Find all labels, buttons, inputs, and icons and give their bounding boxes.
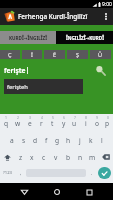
staticText: 2 bbox=[17, 115, 19, 120]
staticText: KURDÎ→ÎNGILÎZÎ bbox=[9, 35, 47, 41]
staticText: Ş bbox=[76, 51, 80, 58]
staticText: Î bbox=[31, 51, 33, 58]
button[interactable]: Ê bbox=[44, 50, 65, 59]
button[interactable]: 7 bbox=[69, 115, 80, 128]
staticText: 3 bbox=[29, 115, 31, 120]
button[interactable]: KURDÎ→ÎNGILÎZÎ bbox=[0, 31, 56, 44]
staticText: t bbox=[51, 119, 54, 128]
staticText: Ç bbox=[8, 51, 12, 58]
staticText: Ferhenga Kurdî-Îngilîzî bbox=[18, 12, 88, 21]
staticText: ?123 bbox=[3, 170, 13, 176]
button[interactable]: n bbox=[74, 151, 86, 163]
staticText: d bbox=[33, 136, 38, 145]
button[interactable]: Home bbox=[49, 184, 65, 200]
button[interactable]: f bbox=[41, 134, 52, 146]
button[interactable]: 4 bbox=[36, 115, 47, 128]
button[interactable]: 0 bbox=[102, 115, 113, 128]
button[interactable]: g bbox=[52, 134, 63, 146]
staticText: o bbox=[95, 119, 99, 128]
staticText: 8 bbox=[85, 115, 87, 120]
button[interactable]: ÎNGILÎZÎ→KURDÎ bbox=[56, 31, 113, 44]
staticText: . bbox=[91, 170, 93, 177]
staticText: s bbox=[22, 136, 26, 145]
button[interactable]: Ç bbox=[0, 50, 20, 59]
button[interactable]: d bbox=[30, 134, 41, 146]
staticText: 4 bbox=[41, 115, 43, 120]
staticText: 6 bbox=[63, 115, 65, 120]
button[interactable]: , bbox=[16, 167, 25, 179]
button[interactable]: b bbox=[62, 151, 74, 163]
staticText: k bbox=[89, 136, 93, 145]
button[interactable]: k bbox=[85, 134, 96, 146]
button[interactable]: 5 bbox=[47, 115, 58, 128]
staticText: 9:00 bbox=[102, 1, 112, 8]
staticText: l bbox=[101, 136, 103, 145]
staticText: ferişte bbox=[4, 66, 26, 75]
button[interactable]: ferişte bbox=[4, 66, 88, 75]
staticText: w bbox=[15, 119, 21, 128]
staticText: r bbox=[40, 119, 43, 128]
button[interactable]: Î bbox=[22, 50, 42, 59]
staticText: n bbox=[78, 153, 83, 162]
button[interactable]: Recents bbox=[81, 184, 97, 200]
button[interactable]: Search bbox=[92, 62, 108, 78]
staticText: u bbox=[72, 119, 77, 128]
button[interactable]: 1 bbox=[0, 115, 12, 128]
staticText: b bbox=[66, 153, 71, 162]
staticText: f bbox=[45, 136, 48, 145]
staticText: i bbox=[85, 119, 87, 128]
button[interactable]: 9 bbox=[91, 115, 102, 128]
staticText: ÎNGILÎZÎ→KURDÎ bbox=[66, 35, 104, 41]
staticText: z bbox=[19, 153, 23, 162]
button[interactable]: m bbox=[86, 151, 98, 163]
button[interactable]: s bbox=[18, 134, 30, 146]
button[interactable]: 8 bbox=[80, 115, 91, 128]
staticText: ferişteh bbox=[7, 83, 28, 91]
staticText: c bbox=[42, 153, 46, 162]
staticText: Û bbox=[98, 51, 103, 58]
staticText: x bbox=[30, 153, 34, 162]
staticText: 0 bbox=[107, 115, 109, 120]
button[interactable]: Û bbox=[90, 50, 111, 59]
staticText: a bbox=[10, 136, 14, 145]
staticText: h bbox=[66, 136, 71, 145]
staticText: g bbox=[55, 136, 60, 145]
staticText: 5 bbox=[52, 115, 54, 120]
button[interactable]: More options bbox=[99, 10, 112, 23]
button[interactable]: a bbox=[6, 134, 18, 146]
staticText: 7 bbox=[74, 115, 76, 120]
staticText: q bbox=[4, 119, 9, 128]
button[interactable]: z bbox=[15, 151, 26, 163]
staticText: j bbox=[79, 136, 81, 145]
button[interactable]: j bbox=[74, 134, 85, 146]
staticText: 9 bbox=[96, 115, 98, 120]
button[interactable]: Enter bbox=[96, 167, 113, 179]
staticText: y bbox=[62, 119, 66, 128]
staticText: Ê bbox=[53, 51, 57, 58]
staticText: e bbox=[28, 119, 32, 128]
button[interactable]: 2 bbox=[12, 115, 24, 128]
staticText: 1 bbox=[5, 115, 7, 120]
button[interactable]: v bbox=[50, 151, 62, 163]
button[interactable]: Back bbox=[16, 184, 32, 200]
staticText: m bbox=[89, 153, 96, 162]
staticText: v bbox=[54, 153, 58, 162]
button[interactable]: ?123 bbox=[0, 167, 16, 179]
button[interactable]: x bbox=[26, 151, 38, 163]
staticText: , bbox=[20, 170, 22, 177]
button[interactable]: ferişteh bbox=[4, 79, 83, 94]
button[interactable]: 6 bbox=[58, 115, 69, 128]
button[interactable]: Ş bbox=[67, 50, 88, 59]
button[interactable]: l bbox=[96, 134, 107, 146]
button[interactable]: . bbox=[87, 167, 96, 179]
button[interactable]: Shift bbox=[0, 151, 15, 163]
button[interactable]: Backspace bbox=[98, 151, 113, 163]
staticText: p bbox=[105, 119, 110, 128]
button[interactable]: h bbox=[63, 134, 74, 146]
button[interactable]: 3 bbox=[24, 115, 36, 128]
button[interactable]: c bbox=[38, 151, 50, 163]
